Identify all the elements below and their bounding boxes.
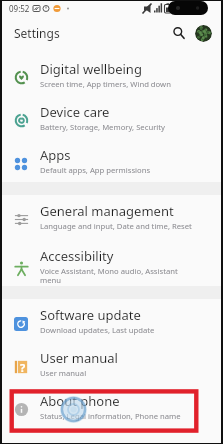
staticText: User manual [40,368,87,378]
button[interactable]: General management [2,195,221,238]
staticText: ? [20,360,26,374]
button[interactable]: Digital wellbeing [2,53,221,96]
staticText: User manual [40,349,118,367]
button[interactable]: Software update [2,299,221,342]
button[interactable]: Search [166,20,192,46]
staticText: 09:52 [9,3,30,14]
staticText: Voice Assistant, Mono audio, Assistant m… [40,266,178,286]
staticText: Accessibility [40,247,114,265]
button[interactable]: Apps [2,139,221,182]
button[interactable]: Account [195,25,212,42]
button[interactable]: ? [2,342,221,385]
staticText: Device care [40,103,110,121]
staticText: Status, Legal information, Phone name [40,411,181,421]
staticText: Settings [14,25,60,41]
staticText: Software update [40,306,141,324]
staticText: Battery, Storage, Memory, Security [40,122,165,132]
button[interactable]: About phone [2,385,221,428]
staticText: About phone [40,392,120,410]
staticText: Language and input, Date and time, Reset [40,221,192,231]
button[interactable]: Accessibility [2,238,221,286]
staticText: Apps [40,146,71,164]
button[interactable]: Device care [2,96,221,139]
staticText: Download updates, Last update [40,325,155,335]
staticText: Screen time, App timers, Wind down [40,79,171,89]
staticText: Digital wellbeing [40,60,142,78]
staticText: General management [40,202,174,220]
staticText: Default apps, App permissions [40,165,151,175]
